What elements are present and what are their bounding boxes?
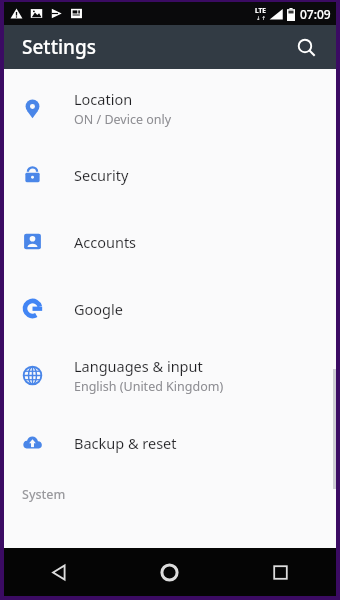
staticText: LTE [255, 6, 266, 15]
staticText: ↓ ↑ [256, 15, 266, 22]
staticText: System [22, 486, 66, 503]
staticText: 07:09 [300, 6, 331, 22]
button[interactable]: Languages & input [4, 342, 336, 409]
button[interactable]: Google [4, 275, 336, 342]
staticText: English (United Kingdom) [74, 378, 224, 395]
staticText: Languages & input [74, 356, 203, 376]
staticText: Settings [22, 34, 96, 60]
staticText: ON / Device only [74, 111, 172, 128]
staticText: Google [74, 299, 123, 319]
button[interactable]: Back [4, 548, 114, 596]
button[interactable]: Security [4, 141, 336, 208]
button[interactable]: Backup & reset [4, 409, 336, 476]
button[interactable]: Home [114, 548, 225, 596]
button[interactable]: Location [4, 75, 336, 141]
button[interactable]: Recents [225, 548, 336, 596]
button[interactable]: Search [288, 29, 324, 65]
staticText: Accounts [74, 232, 137, 252]
staticText: Location [74, 89, 133, 109]
staticText: Security [74, 165, 129, 185]
staticText: Backup & reset [74, 433, 177, 453]
button[interactable]: Accounts [4, 208, 336, 275]
